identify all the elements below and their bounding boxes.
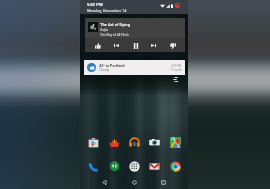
button[interactable]: All apps (127, 159, 141, 173)
button[interactable]: Thumbs up (91, 39, 104, 52)
button[interactable]: Home (128, 176, 141, 189)
button[interactable]: 42° in Portland (84, 60, 185, 75)
button[interactable]: Recents (157, 176, 170, 189)
button[interactable]: Thumbs down (166, 39, 179, 52)
button[interactable]: Phone (86, 159, 100, 173)
button[interactable]: Camera (147, 135, 161, 149)
button[interactable]: Pause (129, 39, 142, 52)
staticText: 5:02 PM (87, 2, 103, 7)
staticText: 4:50 PM (171, 64, 182, 67)
staticText: Gojira (100, 28, 109, 32)
button[interactable]: Headphones (127, 135, 141, 149)
staticText: Cloudy (99, 68, 110, 72)
button[interactable]: Gmail (147, 159, 161, 173)
button[interactable]: Next (147, 39, 160, 52)
button[interactable]: Clear all notifications (172, 76, 179, 83)
staticText: Monday, December 14 (87, 8, 127, 13)
button[interactable]: Messages (107, 159, 121, 173)
button[interactable]: Back (98, 176, 111, 189)
button[interactable]: Play Store (86, 135, 100, 149)
button[interactable]: The Art of Dying (85, 18, 185, 52)
button[interactable]: Hot app (107, 135, 121, 149)
staticText: The Way of All Flesh (100, 33, 129, 37)
button[interactable]: Previous (110, 39, 123, 52)
button[interactable]: Chrome (168, 159, 182, 173)
staticText: 42° in Portland (99, 63, 125, 67)
staticText: 19 cards (171, 68, 182, 71)
staticText: The Art of Dying (100, 22, 131, 27)
button[interactable]: Maps (168, 135, 182, 149)
